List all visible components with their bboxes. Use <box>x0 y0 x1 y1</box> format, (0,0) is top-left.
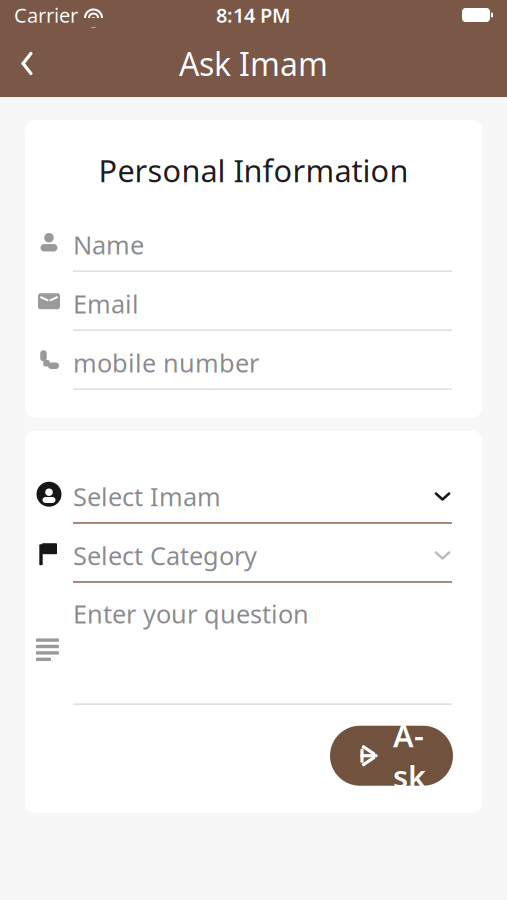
staticText: Name <box>73 228 144 261</box>
staticText: 8:14 PM <box>216 2 291 28</box>
staticText: Personal Information <box>98 150 408 191</box>
button[interactable]: Email <box>25 272 482 331</box>
staticText: Enter your question <box>73 597 309 630</box>
staticText: mobile number <box>73 346 259 379</box>
button[interactable]: Back <box>0 40 36 86</box>
staticText: Ask Imam <box>179 42 328 85</box>
button[interactable]: mobile number <box>25 331 482 390</box>
button[interactable]: Ask <box>330 726 453 786</box>
staticText: Email <box>73 287 139 320</box>
button[interactable]: Select Category <box>25 524 482 583</box>
button[interactable]: Select Imam <box>25 465 482 524</box>
staticText: Select Category <box>73 539 257 572</box>
staticText: Carrier <box>14 2 78 28</box>
staticText: Ask <box>393 715 426 796</box>
button[interactable]: Enter your question <box>25 583 482 705</box>
staticText: Select Imam <box>73 480 221 513</box>
button[interactable]: Name <box>25 213 482 272</box>
